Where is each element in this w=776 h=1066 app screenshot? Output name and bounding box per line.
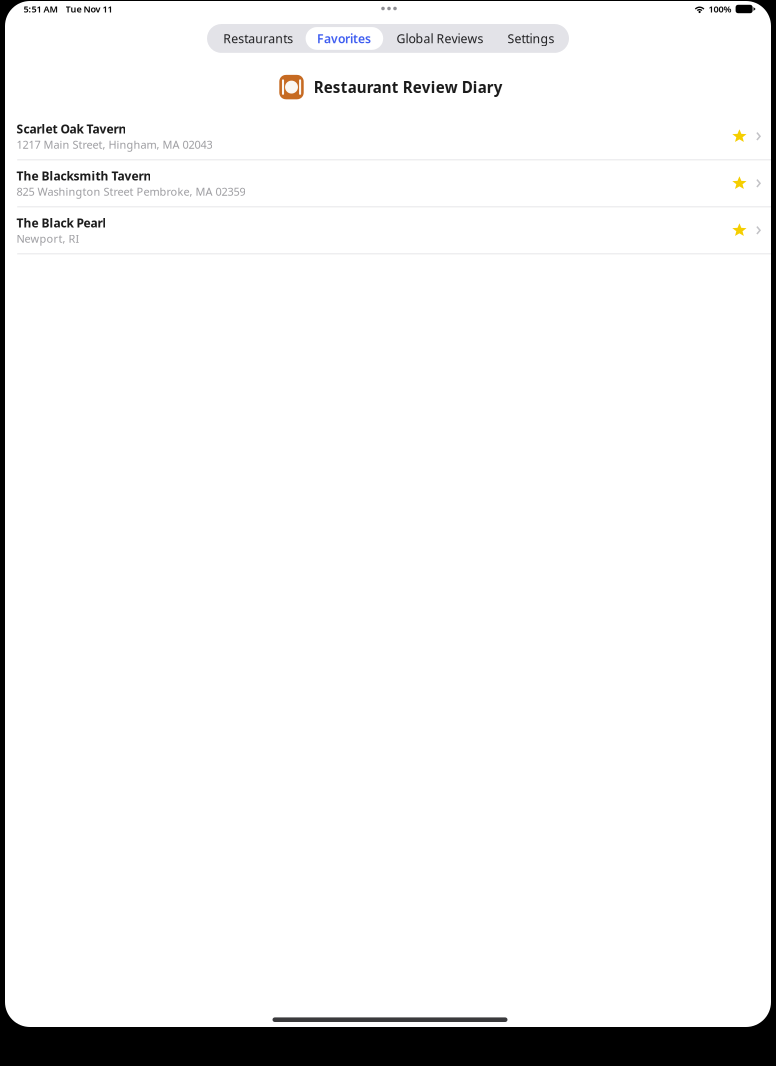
- button[interactable]: The Blacksmith Tavern: [5, 160, 771, 206]
- button[interactable]: Settings: [495, 24, 569, 53]
- button[interactable]: The Black Pearl: [5, 207, 771, 253]
- staticText: Scarlet Oak Tavern: [16, 121, 126, 137]
- staticText: Settings: [507, 30, 554, 47]
- staticText: The Black Pearl: [16, 215, 106, 231]
- staticText: 1217 Main Street, Hingham, MA 02043: [16, 137, 212, 152]
- button[interactable]: Scarlet Oak Tavern: [5, 113, 771, 159]
- staticText: Restaurant Review Diary: [314, 77, 503, 97]
- staticText: The Blacksmith Tavern: [16, 168, 151, 184]
- button[interactable]: Favorites: [306, 24, 383, 53]
- button[interactable]: Restaurant Review Diary: [276, 75, 500, 99]
- button[interactable]: Restaurants: [206, 24, 306, 53]
- staticText: 5:51 AM: [23, 3, 57, 15]
- staticText: Newport, RI: [16, 231, 79, 246]
- staticText: Restaurants: [223, 30, 293, 47]
- staticText: Tue Nov 11: [65, 3, 112, 15]
- staticText: Favorites: [317, 30, 371, 47]
- staticText: Global Reviews: [396, 30, 483, 47]
- button[interactable]: Global Reviews: [383, 24, 495, 53]
- staticText: 100%: [709, 3, 732, 15]
- staticText: 825 Washington Street Pembroke, MA 02359: [16, 184, 245, 199]
